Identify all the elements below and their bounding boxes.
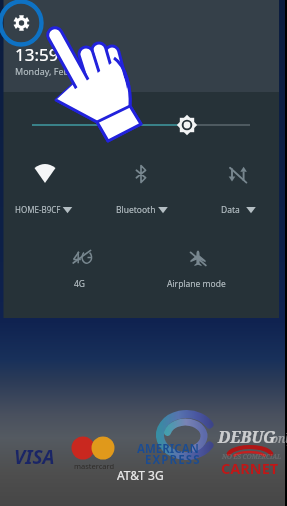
staticText: CARNET [221,458,279,478]
staticText: AT&T 3G [117,467,164,483]
button[interactable]: Brightness [26,112,258,138]
staticText: EXPRESS [145,452,201,468]
staticText: Data [221,204,240,216]
button[interactable]: Bluetooth devices [96,198,188,222]
button[interactable]: Auto rotate [188,155,279,193]
staticText: 13:59 [15,43,59,66]
staticText: only [271,430,287,446]
staticText: HOME-B9CF [15,204,61,215]
button[interactable]: Wi-Fi network [4,198,96,222]
staticText: mastercard [74,461,115,471]
button[interactable]: Airplane mode [150,240,250,296]
button[interactable]: Settings [4,0,44,44]
button[interactable]: 4G [30,240,130,296]
button[interactable]: Data settings [188,198,279,222]
staticText: Bluetooth [116,204,156,216]
staticText: VISA [14,444,55,470]
staticText: 4G [74,278,86,290]
button[interactable]: Bluetooth toggle [96,155,188,193]
button[interactable]: Clock [15,43,110,79]
staticText: Airplane mode [167,278,226,290]
staticText: Monday, Feb 12 [15,65,82,77]
staticText: AMERICAN [137,441,199,457]
staticText: NO ES COMERCIAL [222,452,282,461]
button[interactable]: Wi-Fi [4,155,96,193]
staticText: DEBUG [218,426,276,448]
